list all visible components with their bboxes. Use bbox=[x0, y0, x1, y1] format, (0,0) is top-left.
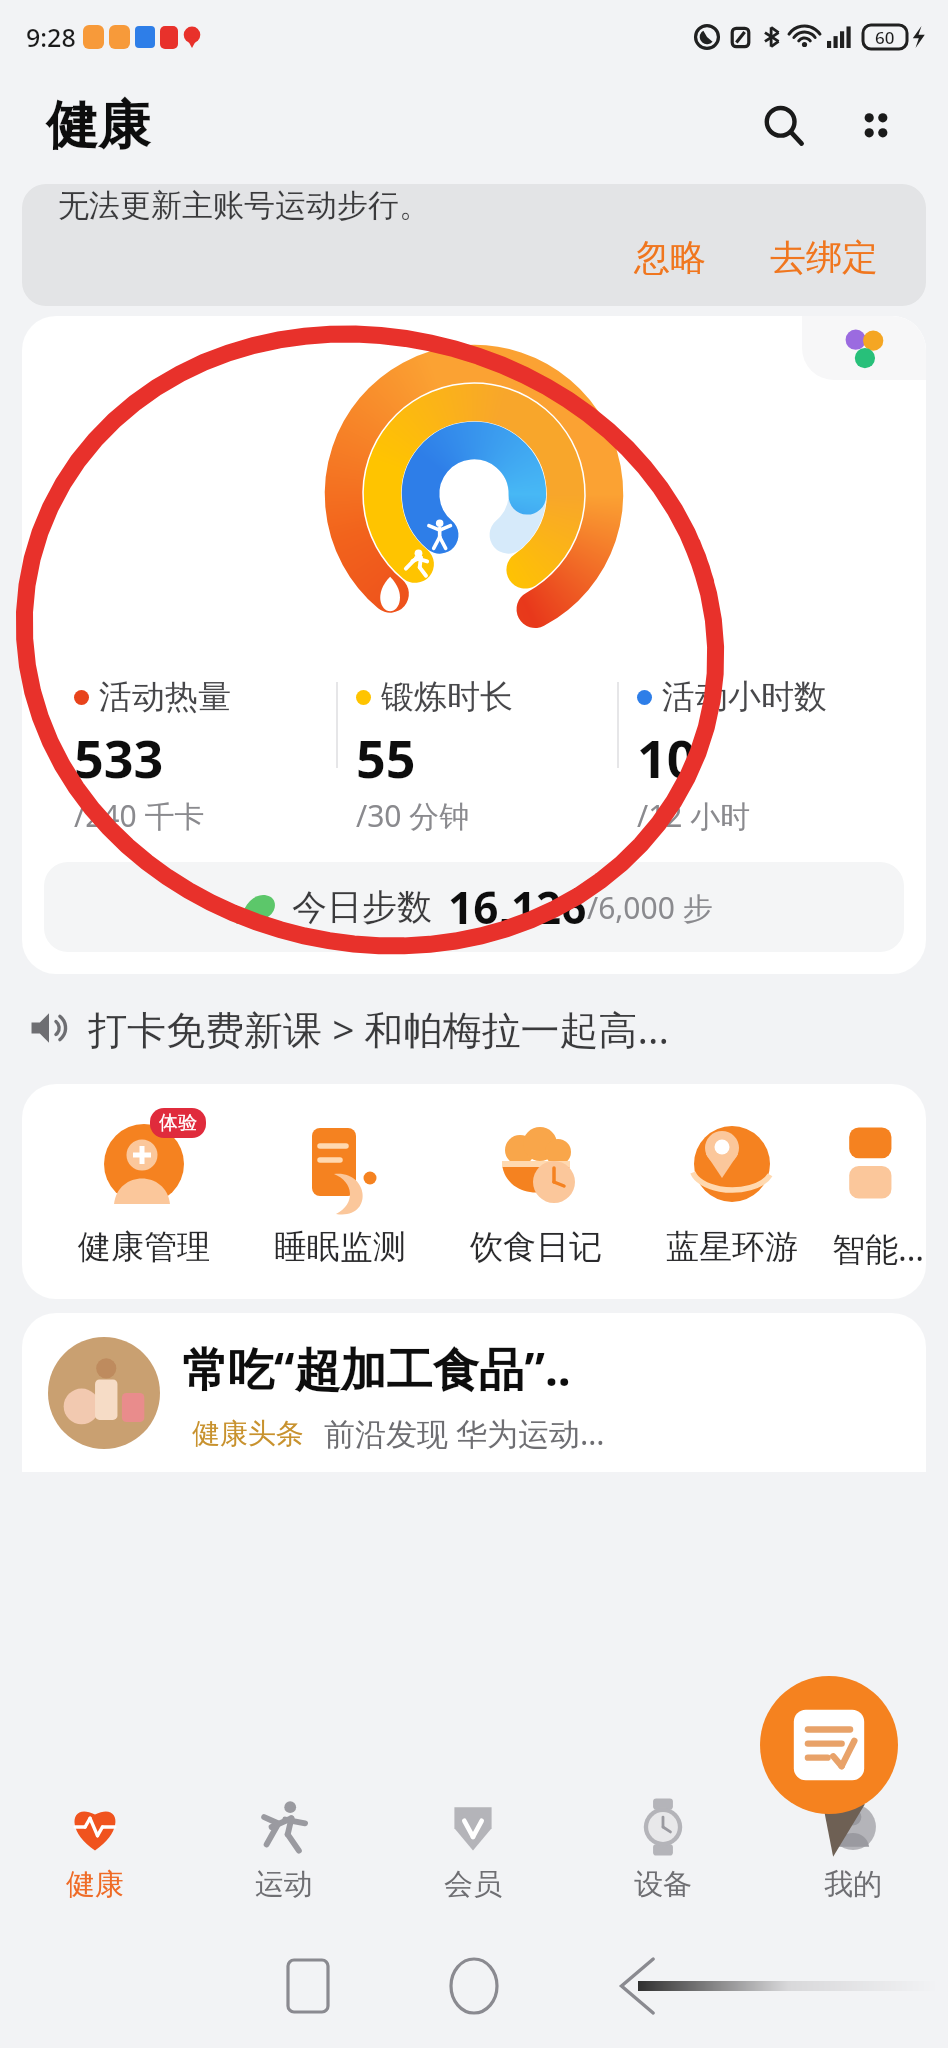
staticText: 健康 bbox=[46, 93, 150, 159]
staticText: 今日步数 bbox=[292, 885, 432, 929]
staticText: 60 bbox=[875, 26, 895, 49]
staticText: 533 bbox=[74, 722, 164, 793]
button[interactable]: More options bbox=[844, 94, 908, 158]
button[interactable]: 忽略 bbox=[624, 231, 716, 284]
button[interactable]: 设备 bbox=[568, 1774, 758, 1924]
staticText: 忽略 bbox=[634, 235, 706, 280]
button[interactable]: 活动小时数 bbox=[619, 672, 898, 840]
staticText: 智能… bbox=[832, 1226, 925, 1271]
button[interactable]: Recents bbox=[268, 1946, 348, 2026]
staticText: 设备 bbox=[634, 1866, 692, 1903]
button[interactable]: Health apps bbox=[802, 316, 926, 380]
button[interactable]: 运动 bbox=[189, 1774, 378, 1924]
button[interactable]: 去绑定 bbox=[760, 231, 888, 284]
button[interactable]: Back bbox=[600, 1946, 680, 2026]
staticText: 16,126 bbox=[448, 877, 587, 937]
staticText: 健康头条 bbox=[192, 1416, 304, 1451]
button[interactable]: 睡眠监测 bbox=[242, 1114, 438, 1268]
staticText: 会员 bbox=[444, 1866, 502, 1903]
staticText: 健康管理 bbox=[78, 1226, 210, 1268]
button[interactable]: 无法更新主账号运动步行。 bbox=[22, 184, 926, 306]
button[interactable]: 我的 bbox=[758, 1774, 948, 1924]
staticText: 睡眠监测 bbox=[274, 1226, 406, 1268]
button[interactable]: Home bbox=[434, 1946, 514, 2026]
staticText: 饮食日记 bbox=[470, 1226, 602, 1268]
button[interactable]: 健康 bbox=[0, 1774, 189, 1924]
button[interactable]: Add record bbox=[754, 1674, 904, 1852]
staticText: 打卡免费新课 > 和帕梅拉一起高... bbox=[88, 1002, 669, 1055]
button[interactable]: 体验 bbox=[46, 1114, 242, 1268]
staticText: /6,000 步 bbox=[587, 887, 713, 928]
staticText: 55 bbox=[356, 722, 416, 793]
staticText: 运动 bbox=[255, 1866, 313, 1903]
staticText: 活动小时数 bbox=[662, 676, 827, 718]
staticText: 活动热量 bbox=[99, 676, 231, 718]
button[interactable]: Search bbox=[752, 94, 816, 158]
staticText: /12 小时 bbox=[637, 795, 751, 836]
staticText: 去绑定 bbox=[770, 235, 878, 280]
staticText: 9:28 bbox=[26, 20, 76, 54]
button[interactable]: 会员 bbox=[378, 1774, 568, 1924]
staticText: 蓝星环游 bbox=[666, 1226, 798, 1268]
staticText: 无法更新主账号运动步行。 bbox=[58, 186, 430, 225]
staticText: 我的 bbox=[824, 1866, 882, 1903]
button[interactable]: 打卡免费新课 > 和帕梅拉一起高... bbox=[26, 982, 922, 1074]
staticText: 10 bbox=[637, 722, 697, 793]
button[interactable]: 饮食日记 bbox=[438, 1114, 634, 1268]
staticText: 健康 bbox=[66, 1866, 124, 1903]
staticText: /240 千卡 bbox=[74, 795, 205, 836]
staticText: 前沿发现 华为运动… bbox=[324, 1412, 605, 1454]
button[interactable]: 活动热量 bbox=[56, 672, 336, 840]
button[interactable]: 智能… bbox=[830, 1114, 926, 1271]
button[interactable]: Health apps bbox=[22, 316, 926, 974]
staticText: 体验 bbox=[159, 1111, 197, 1135]
staticText: /30 分钟 bbox=[356, 795, 470, 836]
button[interactable]: 蓝星环游 bbox=[634, 1114, 830, 1268]
staticText: 锻炼时长 bbox=[381, 676, 513, 718]
staticText: 常吃“超加工食品”.. bbox=[182, 1337, 571, 1400]
button[interactable]: 今日步数 bbox=[44, 862, 904, 952]
button[interactable]: 常吃“超加工食品”.. bbox=[22, 1313, 926, 1472]
button[interactable]: 锻炼时长 bbox=[338, 672, 617, 840]
